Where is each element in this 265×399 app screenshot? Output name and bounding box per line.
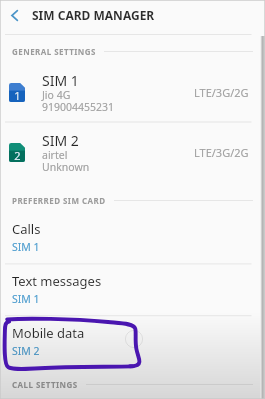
staticText: LTE/3G/2G (194, 145, 249, 160)
staticText: SIM 1 (12, 240, 40, 254)
button[interactable]: 2 (0, 122, 265, 182)
staticText: SIM 1 (42, 71, 79, 90)
button[interactable]: Navigate up (0, 0, 29, 32)
staticText: PREFERRED SIM CARD (12, 195, 106, 206)
staticText: Jio 4G (42, 88, 71, 102)
staticText: Mobile data (12, 324, 85, 342)
staticText: CALL SETTINGS (12, 379, 78, 390)
staticText: airtel (42, 148, 68, 162)
staticText: GENERAL SETTINGS (12, 46, 96, 57)
staticText: SIM 2 (12, 344, 40, 358)
staticText: Text messages (12, 272, 102, 290)
button[interactable]: Calls (0, 212, 265, 263)
button[interactable]: 1 (0, 62, 265, 122)
staticText: LTE/3G/2G (194, 85, 249, 100)
staticText: SIM CARD MANAGER (32, 7, 155, 23)
staticText: 919004455231 (42, 100, 115, 114)
staticText: SIM 2 (42, 131, 79, 150)
staticText: 2 (14, 148, 21, 163)
staticText: Unknown (42, 160, 90, 174)
staticText: SIM 1 (12, 292, 40, 306)
button[interactable]: Text messages (0, 264, 265, 315)
staticText: Calls (12, 220, 41, 238)
staticText: 1 (14, 88, 21, 103)
button[interactable]: Mobile data (0, 316, 265, 367)
